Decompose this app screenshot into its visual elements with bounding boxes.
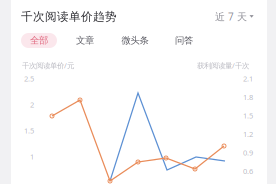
staticText: 获利阅读量/千次 xyxy=(197,60,249,70)
staticText: 文章 xyxy=(76,35,94,46)
staticText: 千次阅读单价/元 xyxy=(22,60,74,70)
staticText: 微头条 xyxy=(121,35,148,46)
button[interactable]: 全部 xyxy=(21,33,57,48)
staticText: 1.5 xyxy=(243,110,253,121)
staticText: 0.9 xyxy=(243,147,253,158)
staticText: 0.6 xyxy=(243,166,253,176)
button[interactable]: 问答 xyxy=(166,33,202,48)
button[interactable]: 微头条 xyxy=(117,33,153,48)
staticText: 1.8 xyxy=(243,92,253,102)
staticText: 1.2 xyxy=(243,129,253,139)
staticText: 千次阅读单价趋势 xyxy=(21,9,117,24)
staticText: 1.5 xyxy=(24,125,34,136)
button[interactable]: 文章 xyxy=(67,33,103,48)
staticText: 全部 xyxy=(30,35,48,46)
staticText: 2 xyxy=(30,99,34,110)
staticText: 问答 xyxy=(175,35,193,46)
staticText: 近 7 天 xyxy=(215,10,247,23)
button[interactable]: 近 7 天 xyxy=(215,10,254,23)
staticText: 1 xyxy=(30,151,34,162)
staticText: 2.1 xyxy=(243,73,253,84)
staticText: 2.5 xyxy=(24,73,34,84)
